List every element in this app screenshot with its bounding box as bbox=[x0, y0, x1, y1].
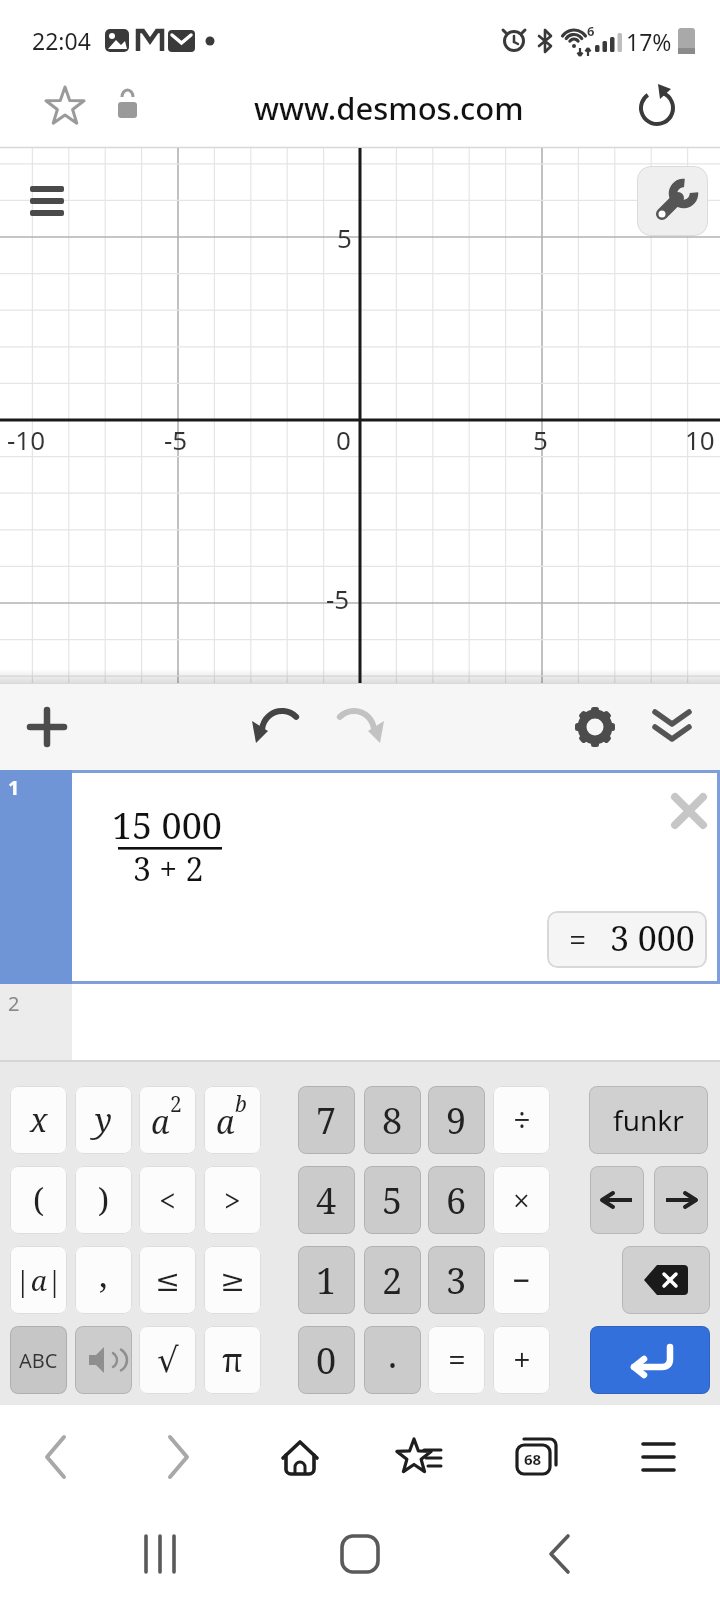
button[interactable]: 1 bbox=[298, 1246, 355, 1314]
button[interactable]: 3 bbox=[428, 1246, 485, 1314]
staticText: 5 bbox=[533, 422, 548, 457]
staticText: 17% bbox=[626, 26, 672, 57]
staticText: 7 bbox=[316, 1096, 337, 1145]
button[interactable]: 2 bbox=[0, 984, 72, 1062]
button[interactable] bbox=[148, 1427, 208, 1477]
staticText: 10 bbox=[685, 422, 715, 457]
staticText: 15 000 bbox=[112, 801, 222, 850]
staticText: x bbox=[30, 1098, 48, 1142]
staticText: a bbox=[151, 1100, 170, 1144]
button[interactable]: 1 bbox=[0, 770, 72, 984]
button[interactable]: > bbox=[204, 1166, 261, 1234]
button[interactable]: funkr bbox=[589, 1086, 708, 1154]
staticText: -5 bbox=[164, 422, 188, 457]
staticText: ) bbox=[98, 1178, 110, 1222]
staticText: > bbox=[224, 1180, 241, 1221]
button[interactable]: 2 bbox=[364, 1246, 421, 1314]
button[interactable]: + bbox=[493, 1326, 550, 1394]
staticText: ABC bbox=[19, 1347, 58, 1374]
button[interactable]: π bbox=[204, 1326, 261, 1394]
staticText: 0 bbox=[336, 422, 351, 457]
button[interactable]: − bbox=[493, 1246, 550, 1314]
staticText: ≥ bbox=[220, 1263, 246, 1298]
staticText: y bbox=[95, 1098, 112, 1142]
button[interactable]: ABC bbox=[10, 1326, 67, 1394]
button[interactable]: × bbox=[493, 1166, 550, 1234]
button[interactable]: < bbox=[139, 1166, 196, 1234]
staticText: funkr bbox=[613, 1101, 684, 1139]
button[interactable] bbox=[590, 1326, 710, 1394]
staticText: 8 bbox=[382, 1096, 403, 1145]
button[interactable] bbox=[530, 1515, 590, 1579]
staticText: 2 bbox=[382, 1256, 403, 1305]
staticText: √ bbox=[157, 1340, 179, 1380]
staticText: . bbox=[388, 1330, 397, 1379]
button[interactable]: 9 bbox=[428, 1086, 485, 1154]
staticText: 5 bbox=[382, 1176, 403, 1225]
button[interactable] bbox=[664, 786, 714, 836]
staticText: 68 bbox=[524, 1449, 542, 1469]
button[interactable] bbox=[632, 84, 684, 132]
button[interactable] bbox=[330, 1515, 390, 1579]
staticText: < bbox=[159, 1180, 176, 1221]
staticText: 1 bbox=[316, 1256, 337, 1305]
staticText: 9 bbox=[446, 1096, 467, 1145]
button[interactable]: ≤ bbox=[139, 1246, 196, 1314]
button[interactable]: ÷ bbox=[493, 1086, 550, 1154]
button[interactable]: |a| bbox=[10, 1246, 67, 1314]
button[interactable] bbox=[130, 1515, 190, 1579]
button[interactable]: 4 bbox=[298, 1166, 355, 1234]
button[interactable]: a bbox=[204, 1086, 261, 1154]
button[interactable] bbox=[75, 1326, 132, 1394]
button[interactable] bbox=[622, 1246, 710, 1314]
staticText: 2 bbox=[170, 1090, 182, 1119]
button[interactable] bbox=[637, 166, 708, 236]
button[interactable] bbox=[567, 700, 623, 754]
staticText: , bbox=[99, 1251, 108, 1297]
button[interactable] bbox=[270, 1427, 330, 1477]
staticText: 3 + 2 bbox=[133, 847, 204, 891]
button[interactable]: 7 bbox=[298, 1086, 355, 1154]
button[interactable] bbox=[654, 1166, 708, 1234]
button[interactable]: = bbox=[428, 1326, 485, 1394]
button[interactable] bbox=[250, 700, 314, 754]
button[interactable] bbox=[644, 700, 700, 754]
button[interactable]: 0 bbox=[298, 1326, 355, 1394]
button[interactable] bbox=[160, 84, 620, 132]
button[interactable]: ) bbox=[75, 1166, 132, 1234]
staticText: -5 bbox=[326, 581, 350, 616]
button[interactable]: 8 bbox=[364, 1086, 421, 1154]
staticText: + bbox=[513, 1338, 531, 1382]
button[interactable]: y bbox=[75, 1086, 132, 1154]
staticText: ÷ bbox=[513, 1098, 531, 1142]
button[interactable]: 6 bbox=[428, 1166, 485, 1234]
button[interactable] bbox=[390, 1427, 450, 1477]
button[interactable] bbox=[508, 1427, 568, 1477]
staticText: 3 bbox=[446, 1256, 467, 1305]
staticText: × bbox=[513, 1180, 530, 1221]
staticText: 22:04 bbox=[32, 25, 91, 56]
staticText: 6 bbox=[446, 1176, 467, 1225]
staticText: 1 bbox=[8, 774, 20, 801]
button[interactable] bbox=[26, 1427, 86, 1477]
button[interactable]: a bbox=[139, 1086, 196, 1154]
button[interactable] bbox=[30, 86, 96, 130]
button[interactable]: , bbox=[75, 1246, 132, 1314]
button[interactable] bbox=[18, 700, 76, 754]
staticText: π bbox=[222, 1338, 243, 1382]
staticText: ≤ bbox=[155, 1263, 181, 1298]
staticText: ( bbox=[33, 1178, 45, 1222]
staticText: |a| bbox=[15, 1261, 63, 1299]
button[interactable]: ( bbox=[10, 1166, 67, 1234]
staticText: www.desmos.com bbox=[254, 87, 524, 129]
staticText: 6 bbox=[587, 22, 595, 40]
button[interactable]: √ bbox=[139, 1326, 196, 1394]
button[interactable]: x bbox=[10, 1086, 67, 1154]
staticText: 2 bbox=[8, 990, 20, 1017]
button[interactable]: 5 bbox=[364, 1166, 421, 1234]
button[interactable]: . bbox=[364, 1326, 421, 1394]
button[interactable] bbox=[326, 700, 390, 754]
button[interactable] bbox=[590, 1166, 644, 1234]
button[interactable] bbox=[630, 1427, 690, 1477]
button[interactable]: ≥ bbox=[204, 1246, 261, 1314]
